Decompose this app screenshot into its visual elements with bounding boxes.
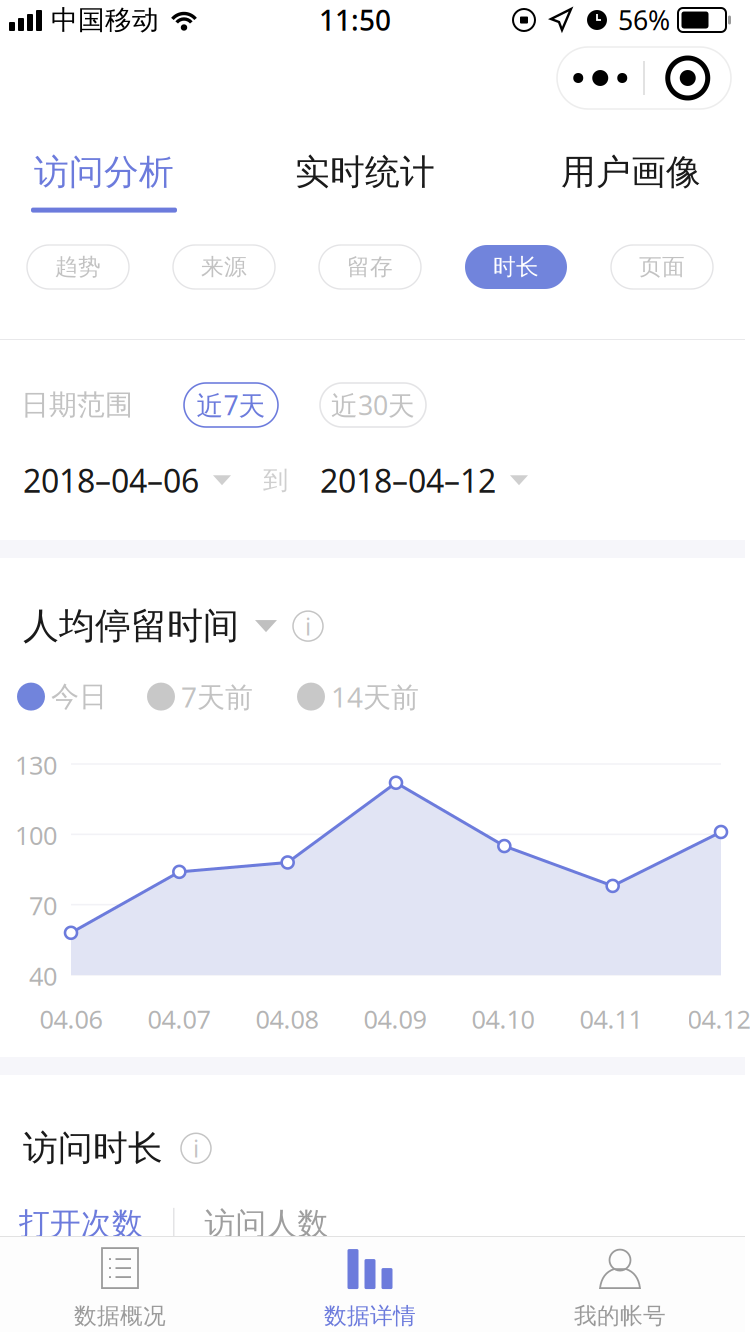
staticText: 近7天	[196, 387, 265, 423]
staticText: 04.06	[39, 1002, 102, 1036]
staticText: 到	[263, 465, 288, 496]
button[interactable]: 近7天	[184, 383, 278, 427]
staticText: 04.08	[255, 1002, 318, 1036]
staticText: 100	[15, 818, 57, 852]
button[interactable]: 页面	[611, 245, 713, 289]
button[interactable]: 用户画像	[536, 151, 726, 213]
button[interactable]: 时长	[465, 245, 567, 289]
staticText: 数据概况	[74, 1302, 166, 1330]
button[interactable]: 数据概况	[0, 1237, 245, 1332]
staticText: 实时统计	[295, 151, 435, 194]
staticText: 访问分析	[34, 151, 174, 194]
button[interactable]: 留存	[319, 245, 421, 289]
staticText: 56%	[618, 2, 670, 38]
staticText: 04.12	[687, 1002, 750, 1036]
staticText: 2018–04–06	[23, 459, 199, 501]
staticText: 打开次数	[19, 1205, 143, 1243]
staticText: 人均停留时间	[23, 604, 239, 648]
staticText: 数据详情	[324, 1302, 416, 1330]
button[interactable]: 数据详情	[245, 1237, 495, 1332]
staticText: 04.09	[363, 1002, 426, 1036]
staticText: i	[305, 610, 311, 642]
staticText: 中国移动	[51, 4, 159, 36]
staticText: 70	[29, 889, 57, 922]
staticText: i	[193, 1132, 199, 1164]
button[interactable]: 我的帐号	[495, 1237, 745, 1332]
button[interactable]: 实时统计	[270, 151, 460, 213]
staticText: 时长	[493, 253, 539, 281]
staticText: 7天前	[181, 678, 253, 715]
staticText: 04.11	[579, 1002, 642, 1036]
staticText: 2018–04–12	[320, 459, 496, 501]
staticText: 留存	[347, 253, 393, 281]
staticText: 近30天	[331, 387, 415, 423]
staticText: 用户画像	[561, 151, 701, 194]
staticText: 今日	[51, 679, 107, 714]
staticText: 130	[15, 748, 57, 782]
button[interactable]: 2018–04–12	[320, 459, 528, 501]
button[interactable]: 2018–04–06	[23, 459, 231, 501]
staticText: 日期范围	[21, 388, 133, 422]
button[interactable]: 趋势	[27, 245, 129, 289]
staticText: 40	[29, 959, 57, 993]
staticText: 访问人数	[204, 1205, 328, 1243]
button[interactable]: 来源	[173, 245, 275, 289]
button[interactable]: 近30天	[320, 383, 426, 427]
button[interactable]: 访问分析	[9, 151, 199, 213]
staticText: 我的帐号	[574, 1302, 666, 1330]
staticText: 来源	[201, 253, 247, 281]
staticText: 访问时长	[23, 1127, 163, 1170]
staticText: 04.10	[471, 1002, 534, 1036]
staticText: 趋势	[55, 253, 101, 281]
staticText: 14天前	[331, 678, 419, 715]
staticText: 页面	[639, 253, 685, 281]
staticText: 11:50	[319, 1, 391, 39]
staticText: 04.07	[147, 1002, 210, 1036]
